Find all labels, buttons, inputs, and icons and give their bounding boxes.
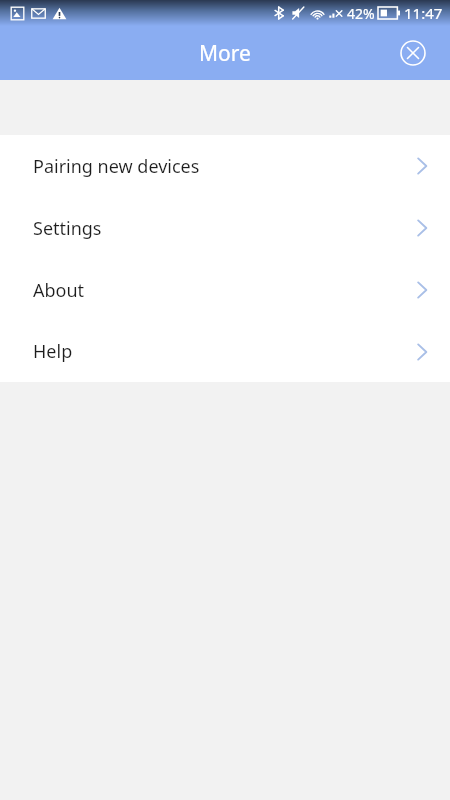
staticText: More — [199, 39, 251, 68]
staticText: Settings — [33, 216, 416, 241]
button[interactable]: Help — [0, 321, 450, 382]
button[interactable]: Settings — [0, 197, 450, 259]
button[interactable]: About — [0, 259, 450, 321]
button[interactable]: Pairing new devices — [0, 135, 450, 197]
staticText: About — [33, 278, 416, 303]
staticText: 11:47 — [404, 3, 443, 23]
staticText: Pairing new devices — [33, 154, 416, 179]
button[interactable]: Close — [398, 38, 428, 68]
staticText: 42% — [347, 4, 375, 23]
staticText: Help — [33, 339, 416, 364]
